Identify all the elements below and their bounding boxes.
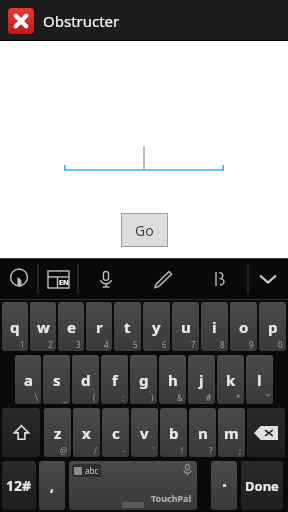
staticText: Obstructer <box>43 11 120 31</box>
button[interactable]: , <box>39 461 65 510</box>
other: Backspace <box>247 408 285 457</box>
staticText: e <box>67 317 76 337</box>
staticText: # <box>206 392 212 403</box>
staticText: 3 <box>76 339 81 350</box>
button[interactable]: c <box>102 408 129 457</box>
button[interactable]: q <box>2 302 28 351</box>
button[interactable]: h <box>159 355 186 404</box>
staticText: EN <box>59 278 69 288</box>
staticText: - <box>123 445 126 456</box>
button[interactable]: v <box>131 408 158 457</box>
button[interactable]: a <box>15 355 41 404</box>
button[interactable]: Language EN <box>38 258 78 300</box>
button[interactable]: Hide keyboard <box>248 258 288 300</box>
staticText: ! <box>181 445 184 456</box>
staticText: Done <box>245 477 279 495</box>
staticText: p <box>268 317 278 337</box>
staticText: v <box>140 423 149 443</box>
staticText: c <box>112 423 120 443</box>
staticText: 9 <box>249 339 254 350</box>
button[interactable]: j <box>188 355 215 404</box>
button[interactable]: 12# <box>2 461 36 510</box>
button[interactable]: s <box>43 355 70 404</box>
button[interactable]: f <box>101 355 128 404</box>
staticText: u <box>181 317 191 337</box>
staticText: / <box>94 445 97 456</box>
staticText: 5 <box>133 339 138 350</box>
staticText: , <box>50 476 54 495</box>
other: Shift <box>2 408 40 457</box>
button[interactable]: p <box>259 302 286 351</box>
button[interactable]: b <box>160 408 187 457</box>
button[interactable]: Done <box>241 461 283 510</box>
staticText: \ <box>35 392 38 403</box>
button[interactable]: d <box>72 355 99 404</box>
button[interactable]: x <box>73 408 100 457</box>
staticText: b <box>169 423 179 443</box>
button[interactable]: Period <box>211 461 237 510</box>
staticText: ' <box>153 445 155 456</box>
staticText: y <box>152 317 161 337</box>
staticText: g <box>139 370 149 390</box>
staticText: _ <box>63 392 67 403</box>
staticText: q <box>10 317 20 337</box>
button[interactable]: m <box>218 408 245 457</box>
staticText: 0 <box>278 339 283 350</box>
button[interactable]: t <box>114 302 141 351</box>
staticText: 7 <box>191 339 196 350</box>
staticText: Go <box>135 221 154 240</box>
button[interactable]: Shift <box>2 408 40 457</box>
staticText: h <box>168 370 178 390</box>
button[interactable]: i <box>201 302 228 351</box>
button[interactable]: Gesture input <box>0 258 38 300</box>
staticText: abc <box>85 465 99 476</box>
staticText: l <box>257 370 262 390</box>
button[interactable]: o <box>230 302 257 351</box>
staticText: r <box>96 317 103 337</box>
staticText: ) <box>151 392 154 403</box>
button[interactable]: e <box>58 302 84 351</box>
staticText: x <box>82 423 91 443</box>
staticText: n <box>198 423 208 443</box>
staticText: 8 <box>220 339 225 350</box>
staticText: ; <box>239 445 242 456</box>
staticText: z <box>54 423 62 443</box>
staticText: & <box>177 392 183 403</box>
button[interactable]: Go <box>122 214 167 246</box>
button[interactable]: w <box>30 302 56 351</box>
button[interactable]: r <box>86 302 112 351</box>
staticText: o <box>239 317 249 337</box>
button[interactable]: Gesture <box>191 258 248 300</box>
staticText: k <box>226 370 236 390</box>
staticText: : <box>122 392 125 403</box>
button[interactable]: u <box>172 302 199 351</box>
staticText: f <box>112 370 118 390</box>
staticText: " <box>266 392 270 403</box>
staticText: 4 <box>104 339 109 350</box>
button[interactable]: z <box>44 408 71 457</box>
staticText: m <box>224 423 239 443</box>
staticText: TouchPal <box>151 492 192 504</box>
staticText: d <box>81 370 91 390</box>
button[interactable]: Voice input <box>78 258 134 300</box>
other: Space <box>69 461 197 510</box>
staticText: s <box>53 370 61 390</box>
staticText: a <box>24 370 33 390</box>
button[interactable]: l <box>246 355 273 404</box>
button[interactable]: g <box>130 355 157 404</box>
button[interactable]: y <box>143 302 170 351</box>
staticText: ? <box>209 445 213 456</box>
button[interactable]: Handwriting <box>134 258 191 300</box>
other: Period <box>211 461 237 510</box>
staticText: 1 <box>20 339 25 350</box>
button[interactable]: n <box>189 408 216 457</box>
staticText: w <box>37 317 50 337</box>
staticText: * <box>236 392 241 403</box>
button[interactable]: Space <box>69 461 197 510</box>
button[interactable]: Backspace <box>247 408 285 457</box>
staticText: t <box>124 317 131 337</box>
staticText: i <box>212 317 217 337</box>
staticText: 6 <box>162 339 167 350</box>
button[interactable]: k <box>217 355 244 404</box>
staticText: @ <box>60 445 68 456</box>
